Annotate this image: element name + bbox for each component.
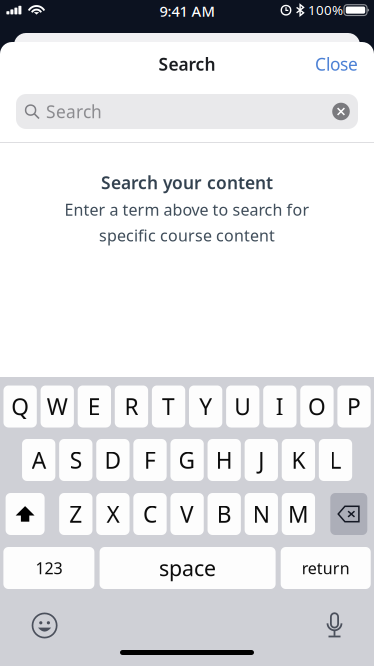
button[interactable]: I (263, 385, 296, 427)
staticText: 123 (35, 557, 62, 579)
button[interactable]: A (22, 439, 55, 481)
staticText: L (329, 445, 341, 475)
staticText: J (258, 445, 264, 475)
staticText: Search (158, 52, 215, 75)
staticText: Enter a term above to search for (64, 199, 309, 220)
staticText: specific course content (99, 225, 275, 246)
button[interactable]: Shift (6, 493, 45, 535)
button[interactable]: N (245, 493, 278, 535)
button[interactable]: H (208, 439, 241, 481)
button[interactable]: G (170, 439, 204, 481)
staticText: O (308, 391, 326, 421)
button[interactable]: Y (189, 385, 222, 427)
button[interactable]: U (226, 385, 259, 427)
staticText: P (347, 391, 361, 421)
staticText: W (47, 391, 68, 421)
staticText: Search your content (101, 171, 273, 194)
staticText: return (302, 557, 350, 579)
button[interactable]: D (96, 439, 129, 481)
button[interactable]: Emoji (23, 606, 67, 644)
staticText: A (32, 445, 46, 475)
staticText: V (180, 499, 194, 529)
button[interactable]: return (281, 547, 371, 589)
button[interactable]: X (96, 493, 129, 535)
button[interactable]: C (133, 493, 167, 535)
staticText: N (253, 499, 270, 529)
staticText: B (217, 499, 232, 529)
button[interactable]: M (282, 493, 315, 535)
staticText: Search (46, 100, 102, 123)
staticText: K (291, 445, 305, 475)
button[interactable]: Close (303, 42, 374, 86)
staticText: 100% (308, 1, 343, 19)
staticText: I (276, 391, 284, 421)
staticText: Q (11, 391, 29, 421)
staticText: space (159, 554, 216, 582)
button[interactable]: Dictation (312, 607, 356, 645)
button[interactable]: T (152, 385, 185, 427)
staticText: M (288, 499, 309, 529)
button[interactable]: S (59, 439, 92, 481)
button[interactable]: J (245, 439, 278, 481)
button[interactable]: Z (59, 493, 92, 535)
button[interactable]: O (300, 385, 334, 427)
button[interactable]: F (133, 439, 167, 481)
button[interactable]: V (170, 493, 204, 535)
button[interactable]: L (319, 439, 352, 481)
button[interactable]: Delete (330, 493, 367, 535)
staticText: E (88, 391, 101, 421)
button[interactable]: W (41, 385, 74, 427)
staticText: G (179, 445, 196, 475)
button[interactable]: P (337, 385, 371, 427)
button[interactable]: Clear text (331, 102, 351, 120)
staticText: 9:41 AM (159, 1, 214, 21)
button[interactable]: K (282, 439, 315, 481)
button[interactable]: B (208, 493, 241, 535)
staticText: C (143, 499, 157, 529)
staticText: Close (315, 52, 358, 75)
button[interactable]: space (100, 547, 276, 589)
staticText: T (162, 391, 175, 421)
staticText: X (106, 499, 119, 529)
staticText: F (144, 445, 156, 475)
button[interactable]: Q (3, 385, 37, 427)
button[interactable]: E (78, 385, 111, 427)
staticText: U (234, 391, 251, 421)
staticText: R (124, 391, 138, 421)
button[interactable]: 123 (3, 547, 94, 589)
button[interactable]: R (115, 385, 148, 427)
staticText: D (104, 445, 121, 475)
staticText: S (70, 445, 82, 475)
staticText: Y (199, 391, 212, 421)
staticText: H (216, 445, 233, 475)
staticText: Z (69, 499, 82, 529)
